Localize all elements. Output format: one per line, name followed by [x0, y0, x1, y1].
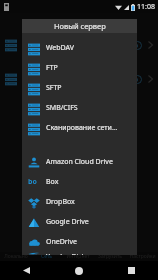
button[interactable]: WebDAV: [22, 38, 137, 58]
staticText: SFTP: [46, 83, 62, 93]
staticText: Новый сервер: [54, 21, 106, 31]
staticText: Локально: [4, 253, 28, 260]
button[interactable]: Recent apps: [105, 261, 158, 280]
button[interactable]: OneDrive: [22, 232, 137, 252]
button[interactable]: SFTP: [22, 78, 137, 98]
staticText: 11:08: [137, 2, 155, 12]
button[interactable]: Google Drive: [22, 212, 137, 232]
staticText: OneDrive: [46, 237, 78, 247]
button[interactable]: SMB/CIFS: [22, 98, 137, 118]
staticText: Сканирование сети…: [46, 123, 118, 133]
button[interactable]: Настройки: [126, 252, 158, 261]
button[interactable]: Home: [52, 261, 105, 280]
staticText: SMB/CIFS: [46, 103, 78, 113]
button[interactable]: Интернет: [62, 252, 94, 261]
staticText: Загрузить: [98, 253, 122, 260]
button[interactable]: box: [22, 172, 137, 192]
button[interactable]: Сеть: [31, 252, 62, 261]
button[interactable]: Сканирование сети…: [22, 118, 137, 138]
staticText: WebDAV: [46, 43, 74, 53]
button[interactable]: Back: [0, 261, 52, 280]
staticText: Amazon Cloud Drive: [46, 157, 113, 167]
button[interactable]: DropBox: [22, 192, 137, 212]
staticText: Yandex.Disk: [46, 252, 86, 255]
button[interactable]: FTP: [22, 58, 137, 78]
button[interactable]: Загрузить: [94, 252, 126, 261]
button[interactable]: Yandex.Disk: [22, 252, 137, 255]
staticText: Box: [46, 177, 59, 187]
staticText: DropBox: [46, 197, 75, 207]
button[interactable]: Локально: [0, 252, 31, 261]
staticText: Интернет: [66, 253, 90, 260]
staticText: Google Drive: [46, 217, 89, 227]
button[interactable]: [0, 71, 158, 87]
staticText: FTP: [46, 63, 58, 73]
button[interactable]: [0, 37, 158, 53]
staticText: box: [28, 177, 40, 189]
button[interactable]: Amazon Cloud Drive: [22, 152, 137, 172]
staticText: Сеть: [41, 253, 52, 260]
staticText: Настройки: [129, 253, 156, 260]
